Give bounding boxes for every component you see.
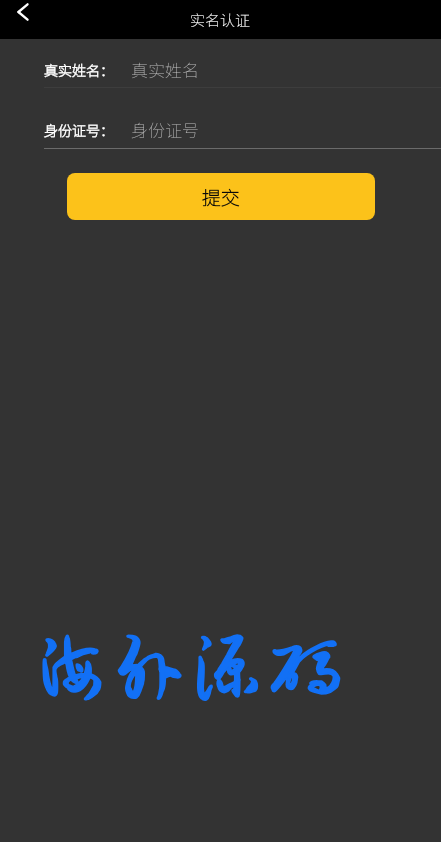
staticText: 实名认证 — [190, 9, 251, 31]
staticText: 身份证号 — [131, 117, 199, 142]
button[interactable]: 提交 — [67, 173, 375, 220]
staticText: 海外源码 — [33, 629, 345, 699]
button[interactable]: 真实姓名： — [0, 39, 441, 88]
staticText: 海外源码 — [33, 629, 345, 699]
staticText: 真实姓名 — [131, 57, 199, 82]
staticText: 提交 — [202, 183, 241, 211]
staticText: 提交 — [202, 183, 241, 211]
button[interactable]: Back — [0, 0, 46, 24]
button[interactable]: 身份证号： — [0, 88, 441, 149]
staticText: 真实姓名： — [44, 60, 114, 80]
staticText: 身份证号： — [44, 120, 114, 140]
